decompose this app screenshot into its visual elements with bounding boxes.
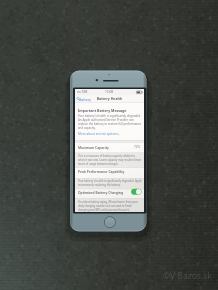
staticText: More about service options... bbox=[78, 132, 121, 136]
staticText: Your battery's health is significantly d… bbox=[78, 179, 142, 187]
staticText: 13:08 bbox=[105, 90, 114, 94]
staticText: Maximum Capacity bbox=[78, 145, 109, 149]
staticText: Battery Health bbox=[75, 96, 144, 101]
button[interactable]: Optimized Battery Charging toggle bbox=[131, 190, 143, 197]
staticText: To reduce battery aging, iPhone learns f… bbox=[78, 200, 142, 212]
staticText: 72% bbox=[134, 145, 140, 149]
staticText: Important Battery Message bbox=[78, 108, 127, 113]
staticText: no SIM bbox=[77, 90, 88, 94]
staticText: ©V Bazos.sk bbox=[163, 270, 212, 282]
staticText: Battery bbox=[79, 97, 91, 102]
staticText: This is a measure of battery capacity re… bbox=[78, 154, 142, 166]
staticText: Your battery's health is significantly d… bbox=[78, 114, 142, 130]
button[interactable]: More about service options bbox=[75, 131, 144, 137]
button[interactable]: Back to Battery bbox=[75, 95, 93, 102]
staticText: Optimized Battery Charging bbox=[78, 190, 123, 194]
staticText: Peak Performance Capability bbox=[78, 169, 125, 173]
